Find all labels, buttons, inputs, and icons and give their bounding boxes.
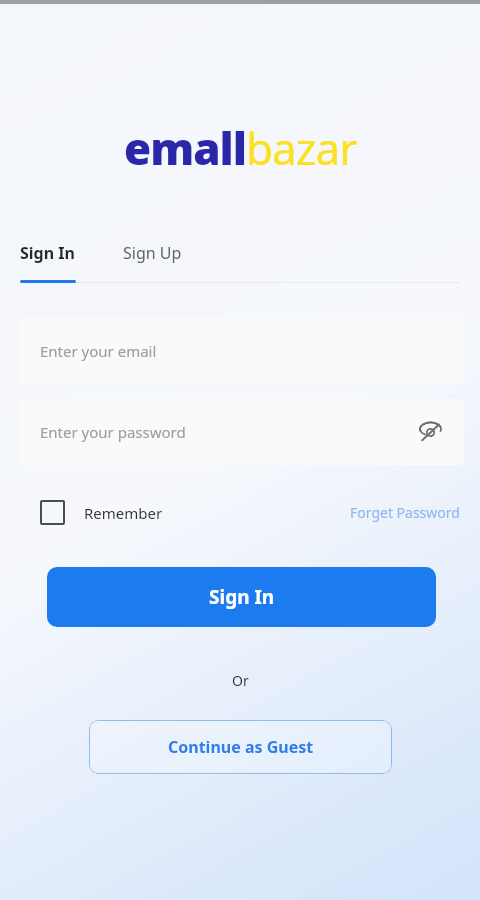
button[interactable]: Sign In bbox=[20, 236, 75, 270]
staticText: Forget Password bbox=[350, 503, 460, 522]
button[interactable]: Remember bbox=[20, 494, 165, 531]
staticText: Enter your email bbox=[40, 341, 157, 361]
button[interactable]: Forget Password bbox=[350, 497, 460, 528]
button[interactable]: Enter your email bbox=[20, 318, 464, 384]
staticText: emallbazar bbox=[124, 118, 357, 178]
staticText: Sign In bbox=[20, 242, 75, 264]
staticText: Enter your password bbox=[40, 422, 186, 442]
staticText: Or bbox=[232, 671, 249, 690]
button[interactable]: Enter your password bbox=[20, 399, 464, 465]
button[interactable]: Sign In bbox=[47, 567, 436, 627]
staticText: Continue as Guest bbox=[168, 736, 314, 758]
button[interactable]: Show password bbox=[414, 416, 446, 448]
staticText: Sign Up bbox=[123, 242, 182, 264]
button[interactable]: Sign Up bbox=[123, 236, 182, 270]
button[interactable]: Continue as Guest bbox=[89, 720, 392, 774]
staticText: Sign In bbox=[209, 584, 275, 610]
staticText: Remember bbox=[84, 503, 163, 523]
